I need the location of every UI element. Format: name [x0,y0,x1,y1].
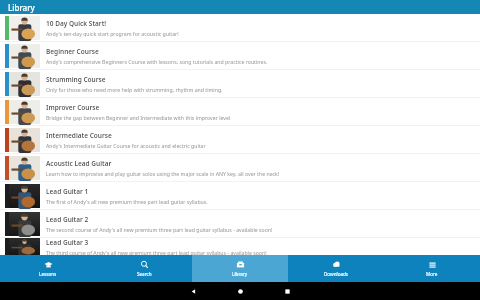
button[interactable]: Search [96,255,192,282]
staticText: Lead Guitar 2 [46,215,89,224]
button[interactable]: Downloads [288,255,384,282]
staticText: Bridge the gap between Beginner and Inte… [46,114,231,121]
button[interactable]: More [384,255,480,282]
other: Home [236,287,245,296]
staticText: Intermediate Course [46,131,112,140]
button[interactable]: Lead Guitar 1 [0,182,480,209]
staticText: More [426,271,438,277]
staticText: Lead Guitar 3 [46,238,89,247]
staticText: Andy's comprehensive Beginners Course wi… [46,58,268,65]
button[interactable]: Intermediate Course [0,126,480,153]
staticText: Library [232,271,248,277]
staticText: Acoustic Lead Guitar [46,159,112,168]
button[interactable]: Lead Guitar 3 [0,238,480,255]
staticText: Lessons [39,271,57,277]
other: Back [189,287,198,296]
staticText: Andy's ten-day quick start program for a… [46,30,179,37]
staticText: Strumming Course [46,75,106,84]
button[interactable]: Strumming Course [0,70,480,97]
button[interactable]: Beginner Course [0,42,480,69]
button[interactable]: Acoustic Lead Guitar [0,154,480,181]
button[interactable]: Library [192,255,288,282]
staticText: The first of Andy's all new premium thre… [46,198,208,205]
staticText: 10 Day Quick Start! [46,19,107,28]
staticText: Andy's Intermediate Guitar Course for ac… [46,142,206,149]
other: Recents [283,287,292,296]
button[interactable]: Improver Course [0,98,480,125]
staticText: Library [8,2,35,13]
staticText: Lead Guitar 1 [46,187,89,196]
staticText: Improver Course [46,103,100,112]
staticText: The third course of Andy's all new premi… [46,249,267,255]
staticText: The second course of Andy's all new prem… [46,226,273,233]
staticText: Only for those who need more help with s… [46,86,223,93]
staticText: Learn how to improvise and play guitar s… [46,170,280,177]
staticText: Beginner Course [46,47,99,56]
button[interactable]: 10 Day Quick Start! [0,14,480,41]
staticText: Downloads [324,271,349,277]
button[interactable]: Lessons [0,255,96,282]
staticText: Search [137,271,152,277]
button[interactable]: Lead Guitar 2 [0,210,480,237]
